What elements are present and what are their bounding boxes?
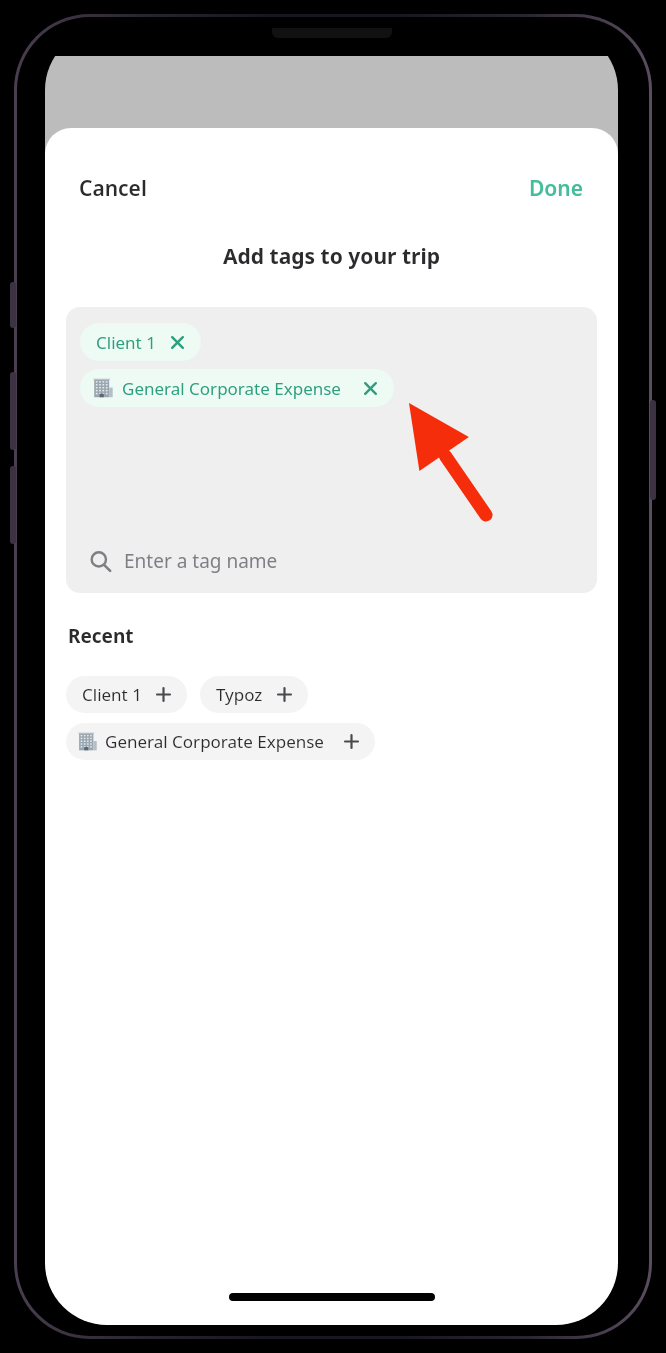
button[interactable]: Client 1 — [66, 676, 187, 713]
button[interactable]: Done — [515, 168, 598, 209]
button[interactable]: Client 1 — [80, 323, 201, 361]
staticText: General Corporate Expense — [122, 377, 341, 400]
staticText: Typoz — [216, 683, 263, 706]
staticText: Client 1 — [96, 331, 156, 354]
staticText: Enter a tag name — [124, 548, 278, 574]
staticText: Done — [529, 174, 584, 203]
staticText: General Corporate Expense — [105, 730, 324, 753]
button[interactable]: General Corporate Expense — [80, 369, 394, 407]
staticText: Cancel — [79, 174, 147, 203]
staticText: Client 1 — [82, 683, 142, 706]
button[interactable]: General Corporate Expense — [66, 723, 375, 760]
button[interactable]: Typoz — [200, 676, 308, 713]
button[interactable]: Cancel — [65, 168, 161, 209]
staticText: Recent — [68, 623, 134, 649]
button[interactable]: Enter a tag name — [80, 533, 583, 589]
staticText: Add tags to your trip — [45, 242, 618, 271]
